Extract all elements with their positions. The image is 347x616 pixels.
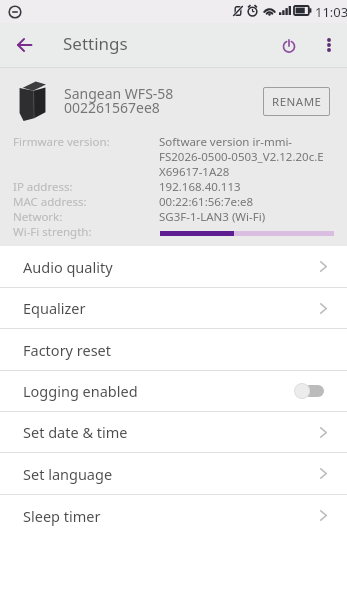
staticText: Sangean WFS-58 [64, 84, 174, 103]
button[interactable]: Sleep timer [0, 495, 347, 536]
staticText: Set language [23, 464, 113, 484]
button[interactable]: Back [4, 25, 44, 65]
button[interactable]: Equalizer [0, 288, 347, 328]
staticText: Factory reset [23, 340, 112, 360]
staticText: 00:22:61:56:7e:e8 [159, 194, 254, 210]
staticText: FS2026-0500-0503_V2.12.20c.E [159, 149, 324, 165]
staticText: Software version ir-mmi- [159, 134, 293, 150]
staticText: Network: [13, 209, 63, 225]
staticText: Logging enabled [23, 381, 138, 401]
staticText: 11:03 [315, 3, 347, 21]
staticText: Firmware version: [13, 134, 110, 150]
staticText: Sleep timer [23, 506, 101, 526]
staticText: IP address: [13, 179, 73, 195]
button[interactable]: Set date & time [0, 412, 347, 452]
staticText: Audio quality [23, 257, 113, 277]
staticText: 002261567ee8 [64, 98, 160, 117]
button[interactable]: Power [269, 25, 309, 65]
staticText: Wi-Fi strength: [13, 224, 92, 240]
staticText: MAC address: [13, 194, 87, 210]
button[interactable]: Logging enabled [0, 371, 347, 411]
staticText: 192.168.40.113 [159, 179, 241, 195]
staticText: Set date & time [23, 422, 128, 442]
button[interactable]: RENAME [263, 87, 330, 116]
button[interactable]: Factory reset [0, 329, 347, 370]
staticText: SG3F-1-LAN3 (Wi-Fi) [159, 209, 266, 225]
staticText: X69617-1A28 [159, 164, 230, 180]
button[interactable]: Set language [0, 453, 347, 494]
button[interactable]: More options [309, 25, 347, 65]
staticText: RENAME [272, 94, 322, 110]
staticText: Settings [63, 32, 128, 55]
button[interactable]: Audio quality [0, 246, 347, 287]
staticText: Equalizer [23, 298, 86, 318]
